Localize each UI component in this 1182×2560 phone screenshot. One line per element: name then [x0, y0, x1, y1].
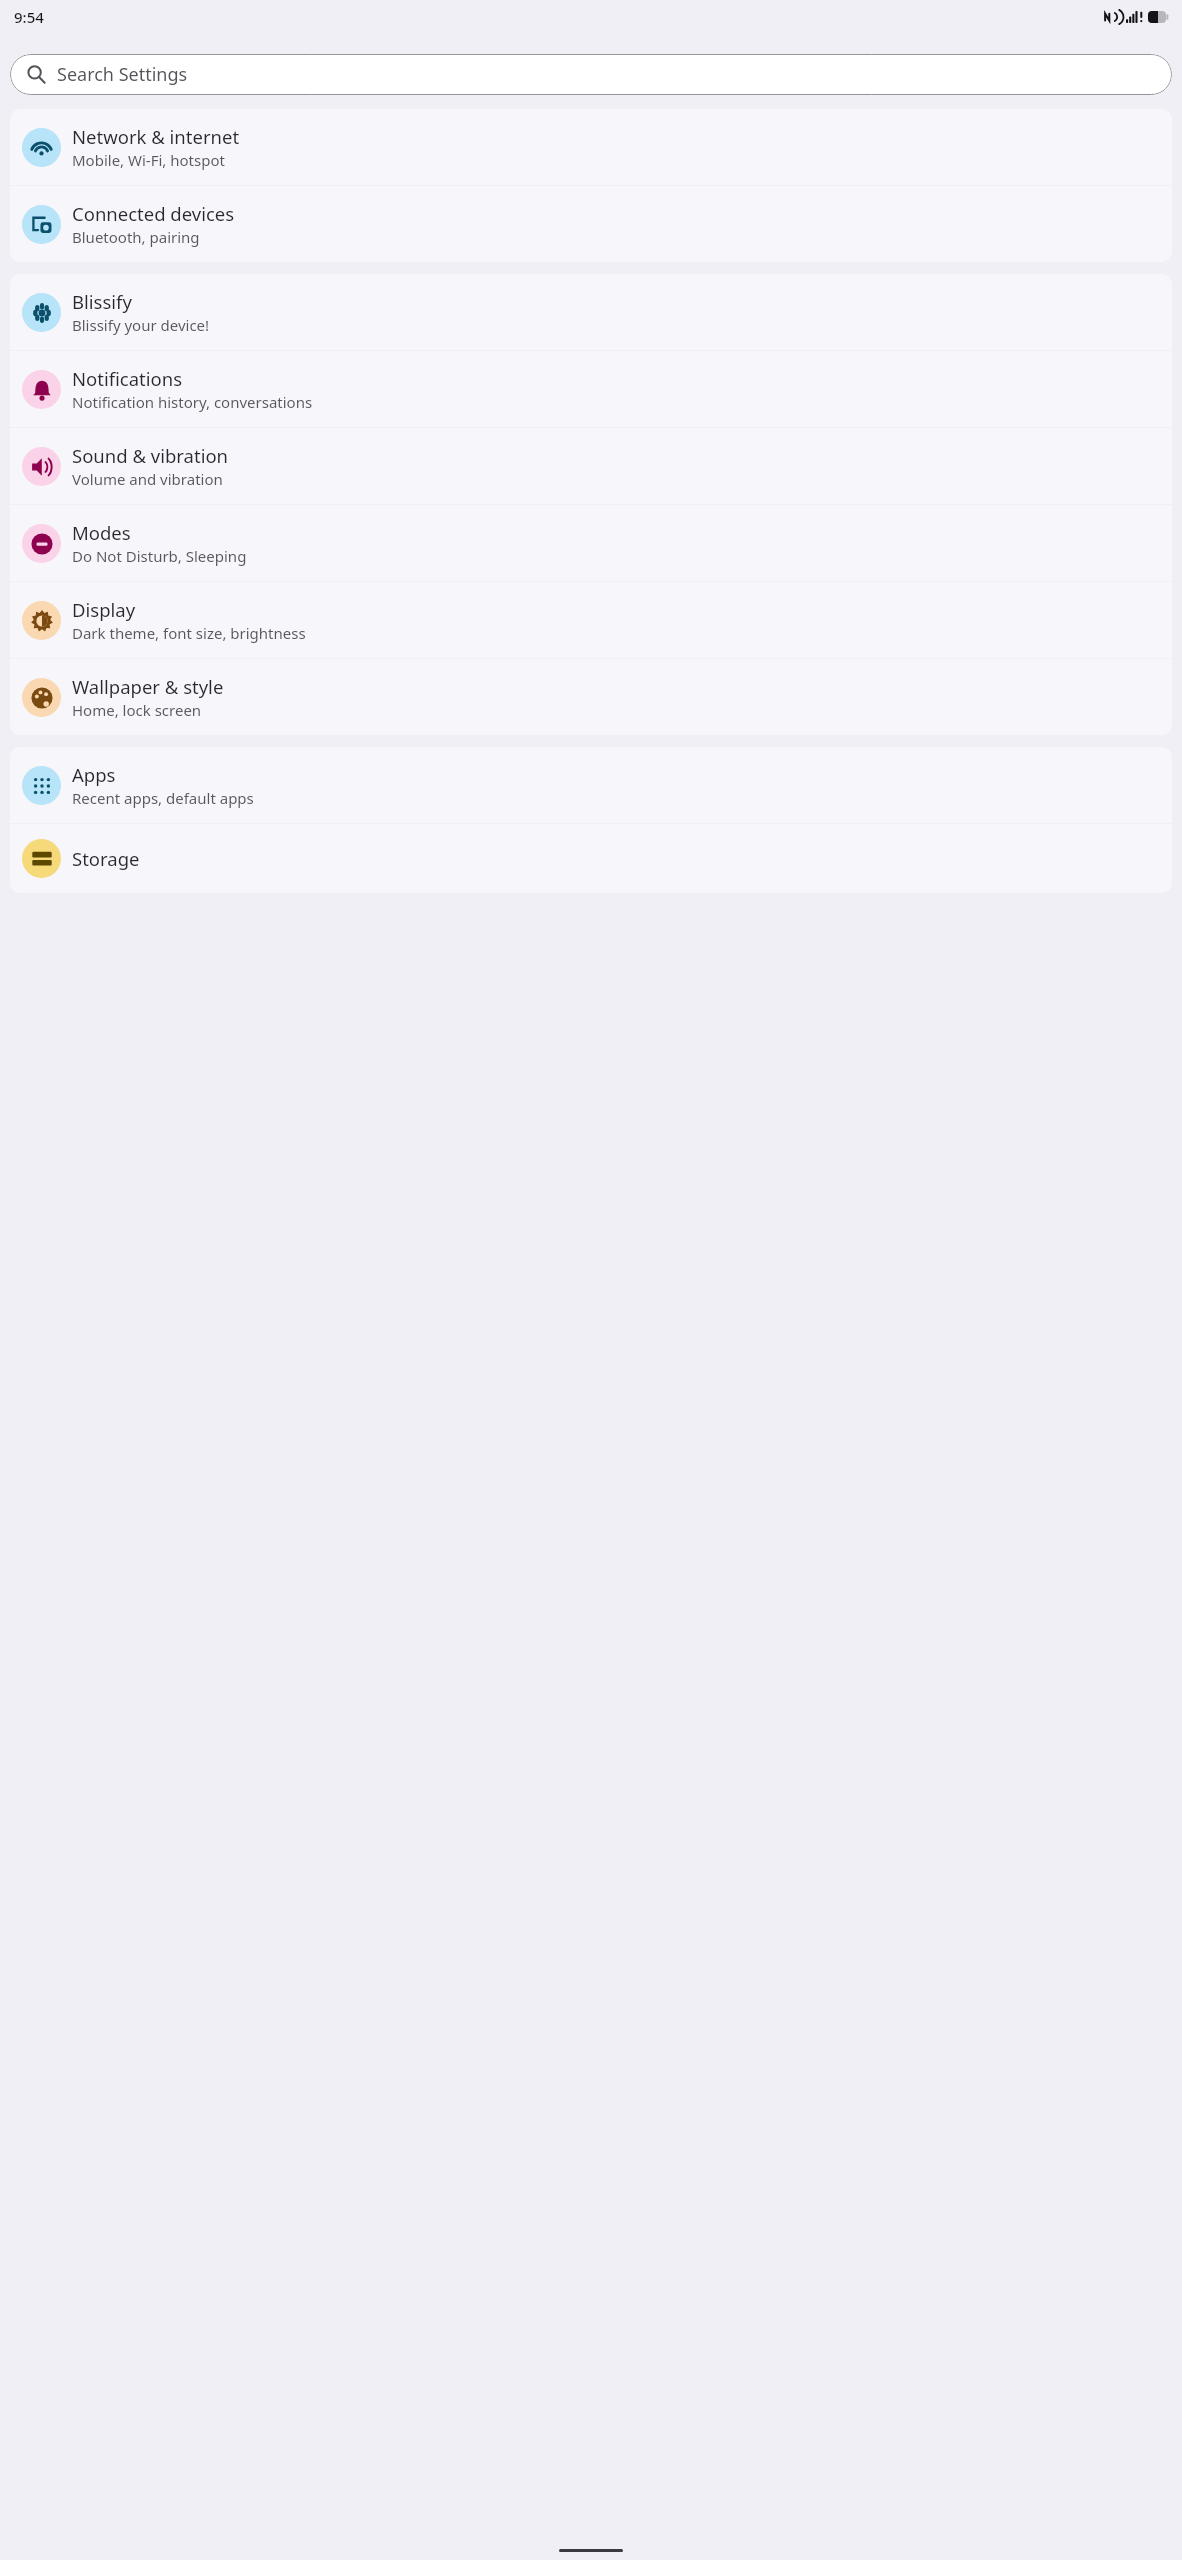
button[interactable]: Storage	[10, 824, 1172, 893]
button[interactable]: Notifications	[10, 351, 1172, 427]
button[interactable]: Wallpaper & style	[10, 659, 1172, 735]
staticText: Apps	[72, 762, 116, 787]
staticText: Do Not Disturb, Sleeping	[72, 546, 247, 566]
button[interactable]: Apps	[10, 747, 1172, 823]
staticText: Bluetooth, pairing	[72, 227, 200, 247]
staticText: Mobile, Wi-Fi, hotspot	[72, 150, 225, 170]
staticText: Modes	[72, 520, 131, 545]
staticText: Dark theme, font size, brightness	[72, 623, 306, 643]
button[interactable]: Blissify	[10, 274, 1172, 350]
button[interactable]: Network & internet	[10, 109, 1172, 185]
staticText: Connected devices	[72, 201, 235, 226]
staticText: Notifications	[72, 366, 183, 391]
staticText: Network & internet	[72, 124, 240, 149]
other: Sound & vibration	[22, 447, 61, 486]
staticText: Blissify your device!	[72, 315, 210, 335]
staticText: Search Settings	[57, 62, 188, 87]
other: Notifications	[22, 370, 61, 409]
staticText: Storage	[72, 846, 140, 871]
staticText: Display	[72, 597, 136, 622]
staticText: Volume and vibration	[72, 469, 223, 489]
other: Connected devices	[22, 205, 61, 244]
button[interactable]: Modes	[10, 505, 1172, 581]
button[interactable]: Sound & vibration	[10, 428, 1172, 504]
button[interactable]: Connected devices	[10, 186, 1172, 262]
staticText: Sound & vibration	[72, 443, 229, 468]
other: Storage	[22, 839, 61, 878]
other: Wallpaper & style	[22, 678, 61, 717]
other: Blissify	[22, 293, 61, 332]
other: Display	[22, 601, 61, 640]
staticText: Home, lock screen	[72, 700, 202, 720]
other: Apps	[22, 766, 61, 805]
staticText: Notification history, conversations	[72, 392, 313, 412]
other: Network & internet	[22, 128, 61, 167]
other: Modes	[22, 524, 61, 563]
button[interactable]: Search Settings	[10, 54, 1172, 95]
staticText: Recent apps, default apps	[72, 788, 254, 808]
button[interactable]: Display	[10, 582, 1172, 658]
staticText: Blissify	[72, 289, 132, 314]
staticText: Wallpaper & style	[72, 674, 224, 699]
staticText: 9:54	[14, 7, 44, 27]
